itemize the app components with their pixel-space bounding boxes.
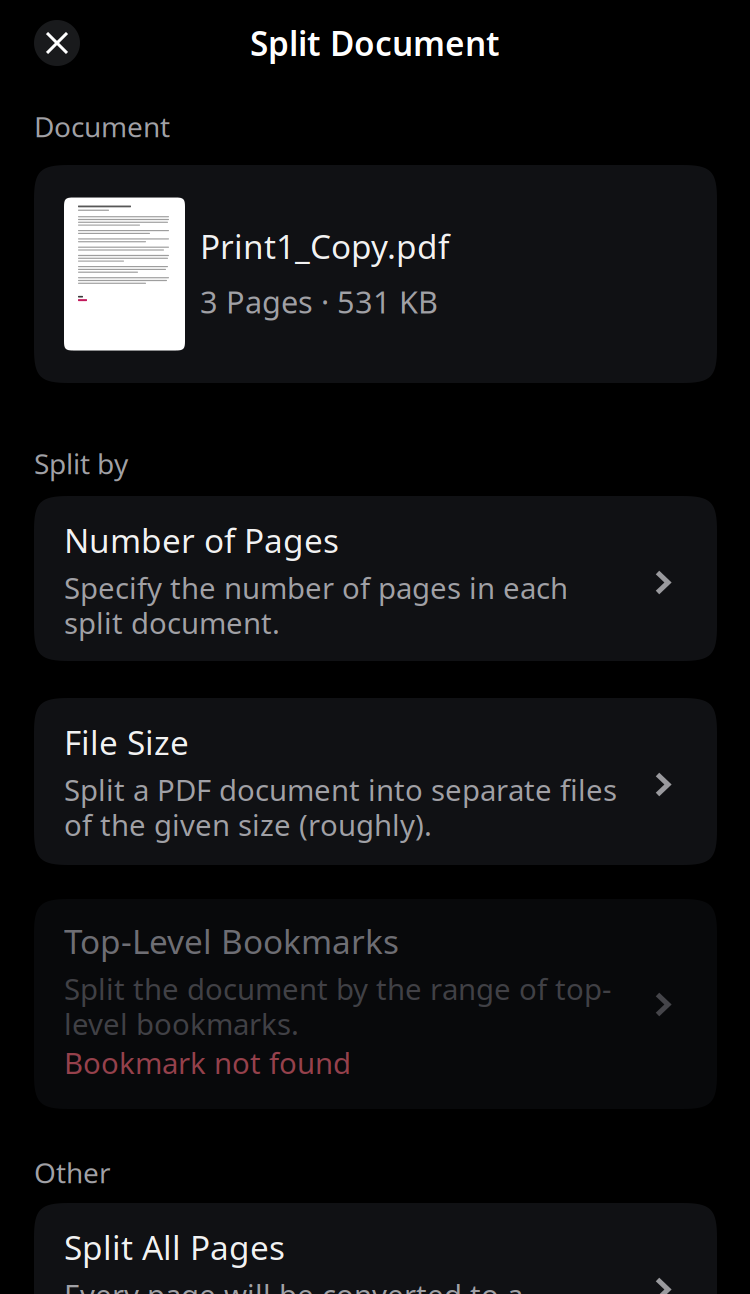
button[interactable]: Split All Pages: [34, 1203, 717, 1294]
button[interactable]: Close: [34, 20, 80, 66]
staticText: Print1_Copy.pdf: [200, 224, 449, 268]
staticText: 3 Pages · 531 KB: [200, 281, 438, 322]
staticText: Split the document by the range of top-: [64, 969, 611, 1008]
staticText: Every page will be converted to a: [64, 1275, 523, 1294]
staticText: Specify the number of pages in each: [64, 568, 568, 607]
staticText: Number of Pages: [64, 518, 339, 562]
staticText: File Size: [64, 720, 189, 764]
staticText: Split by: [34, 445, 128, 482]
staticText: Bookmark not found: [64, 1043, 351, 1082]
button[interactable]: File Size: [34, 698, 717, 865]
staticText: Split All Pages: [64, 1225, 285, 1269]
staticText: Split a PDF document into separate files: [64, 770, 617, 809]
staticText: of the given size (roughly).: [64, 805, 432, 844]
button[interactable]: Number of Pages: [34, 496, 717, 661]
staticText: level bookmarks.: [64, 1004, 299, 1043]
button[interactable]: Top-Level Bookmarks: [34, 899, 717, 1109]
staticText: Split Document: [250, 21, 500, 65]
staticText: Other: [34, 1154, 111, 1191]
staticText: Document: [34, 108, 170, 145]
staticText: split document.: [64, 603, 280, 642]
staticText: Top-Level Bookmarks: [64, 919, 399, 963]
